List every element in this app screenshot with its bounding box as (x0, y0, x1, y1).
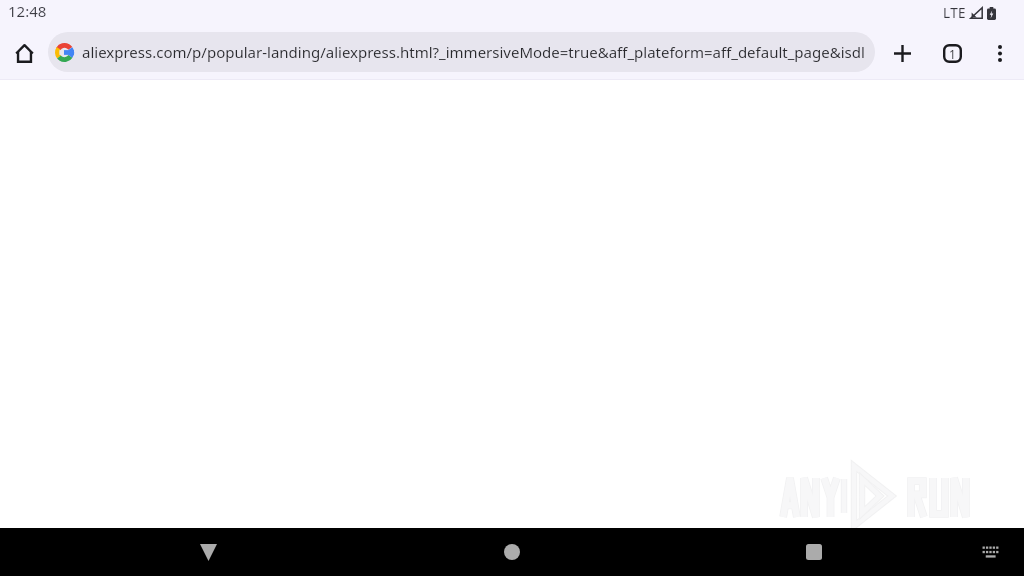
button[interactable]: Home (488, 528, 536, 576)
button[interactable]: Search or type web address (48, 32, 875, 72)
staticText: LTE (943, 4, 967, 22)
button[interactable]: Customize and control Chrome (978, 31, 1022, 75)
button[interactable]: Recent apps (790, 528, 838, 576)
button[interactable]: New tab (880, 31, 924, 75)
button[interactable]: Back (184, 528, 232, 576)
button[interactable]: Switch or close tabs (930, 31, 974, 75)
button[interactable]: Change keyboard (966, 528, 1014, 576)
button[interactable]: Home page (2, 31, 46, 75)
staticText: 12:48 (8, 1, 47, 21)
staticText: 1 (949, 46, 956, 62)
staticText: aliexpress.com/p/popular-landing/aliexpr… (82, 42, 865, 62)
